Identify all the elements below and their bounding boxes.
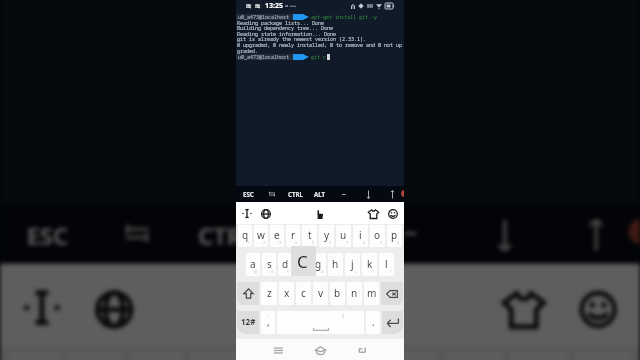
button[interactable]: Change language [259, 207, 272, 220]
button[interactable]: n [347, 282, 362, 305]
button[interactable]: Home [310, 340, 330, 360]
staticText: apt-get install git -y [311, 14, 378, 20]
staticText: git is already the newest version (2.33.… [237, 36, 367, 43]
staticText: n [351, 286, 358, 300]
button[interactable]: Text editing [15, 283, 65, 332]
button[interactable]: Emoji [571, 283, 621, 332]
button[interactable]: q [238, 225, 252, 247]
button[interactable]: Handwriting [313, 207, 326, 220]
button[interactable]: d [278, 253, 292, 276]
staticText: Building dependency tree... Done [237, 25, 334, 32]
staticText: p [391, 228, 398, 242]
button[interactable]: ESC [0, 203, 91, 264]
button[interactable]: p [387, 225, 402, 247]
button[interactable]: Back [352, 340, 372, 360]
button[interactable]: o [370, 225, 385, 247]
staticText: 12# [241, 316, 256, 327]
button[interactable]: u [336, 225, 351, 247]
button[interactable]: Arrow up [380, 186, 404, 202]
button[interactable]: t [302, 225, 317, 247]
staticText: @ [254, 269, 258, 274]
staticText: Reading package lists... Done [237, 20, 325, 27]
button[interactable]: Enter [382, 311, 403, 334]
button[interactable]: h [328, 253, 343, 276]
button[interactable]: – [332, 186, 356, 202]
button[interactable]: Tab [91, 203, 183, 264]
staticText: s [267, 257, 272, 271]
button[interactable]: f [294, 253, 309, 276]
button[interactable]: e [270, 225, 284, 247]
button[interactable]: – [366, 203, 457, 264]
button[interactable]: x [279, 282, 294, 305]
button[interactable]: Space [277, 311, 364, 334]
staticText: ) [390, 269, 392, 274]
button[interactable]: y [319, 225, 334, 247]
button[interactable]: ALT [308, 186, 332, 202]
button[interactable]: k [362, 253, 377, 276]
button[interactable]: ALT [274, 203, 366, 264]
staticText: v [318, 286, 324, 300]
button[interactable]: r [286, 225, 300, 247]
button[interactable]: v [313, 282, 328, 305]
button[interactable]: 12# [237, 311, 259, 334]
button[interactable]: Tab [260, 186, 284, 202]
button[interactable]: r [190, 351, 244, 360]
staticText: € [287, 269, 290, 274]
staticText: j [351, 257, 354, 271]
staticText: f [300, 257, 304, 271]
button[interactable]: CTRL [183, 203, 274, 264]
staticText: – [404, 214, 419, 252]
button[interactable]: c [296, 282, 311, 305]
button[interactable]: b [330, 282, 345, 305]
button[interactable]: Arrow down [457, 203, 549, 264]
button[interactable]: ESC [236, 186, 260, 202]
staticText: 4 [295, 240, 298, 245]
button[interactable]: , [261, 311, 275, 334]
button[interactable]: g [311, 253, 326, 276]
staticText: z [267, 286, 272, 300]
button[interactable]: Theme [367, 207, 380, 220]
staticText: y [324, 228, 330, 242]
staticText: o [374, 228, 381, 242]
staticText: + [355, 269, 358, 274]
button[interactable]: Backspace [381, 282, 403, 305]
button[interactable]: i [353, 225, 368, 247]
button[interactable]: Arrow down [356, 186, 380, 202]
button[interactable]: Shift [237, 282, 259, 305]
button[interactable]: z [261, 282, 277, 305]
staticText: r [291, 228, 296, 242]
staticText: 9 [380, 240, 383, 245]
staticText: 13:25 [265, 1, 283, 11]
button[interactable]: Emoji [386, 207, 399, 220]
button[interactable]: Text editing [240, 207, 253, 220]
staticText: – [342, 189, 346, 199]
button[interactable]: s [262, 253, 276, 276]
button[interactable]: CTRL [284, 186, 308, 202]
staticText: , [267, 315, 270, 329]
button[interactable]: l [379, 253, 394, 276]
button[interactable]: y [316, 351, 373, 360]
button[interactable]: Theme [499, 283, 549, 332]
staticText: h [332, 257, 339, 271]
button[interactable]: Change language [88, 283, 137, 332]
staticText: d [282, 257, 289, 271]
button[interactable]: w [254, 225, 268, 247]
staticText: graded. [237, 48, 259, 55]
button[interactable]: Arrow up [549, 203, 640, 264]
button[interactable]: j [345, 253, 360, 276]
staticText: w [257, 228, 265, 242]
button[interactable]: a [246, 253, 260, 276]
other: Arrow down [366, 190, 371, 199]
button[interactable]: . [366, 311, 380, 334]
button[interactable]: t [251, 351, 309, 360]
button[interactable]: u [381, 351, 438, 360]
button[interactable]: Recent apps [268, 340, 288, 360]
button[interactable]: m [364, 282, 379, 305]
button[interactable]: Handwriting [293, 283, 343, 332]
